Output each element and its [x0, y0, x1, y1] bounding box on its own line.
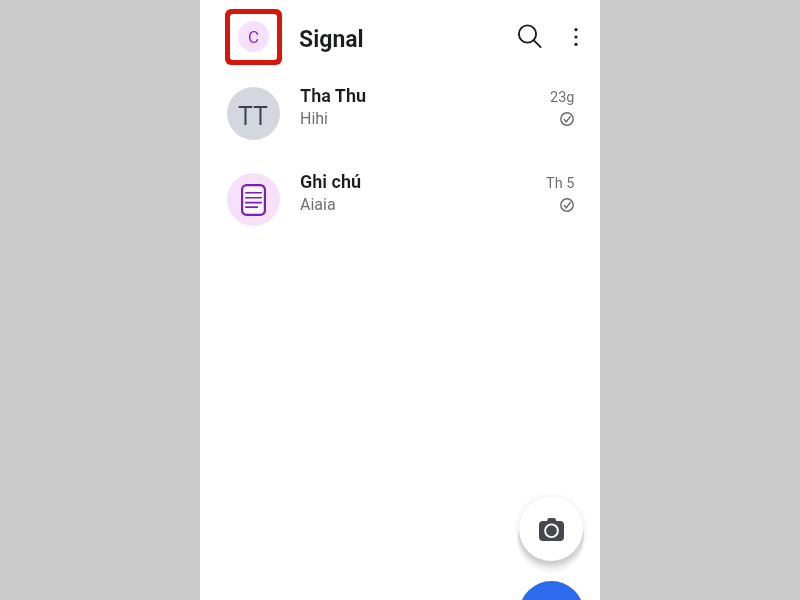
button[interactable]: Ghi chú	[200, 162, 600, 248]
staticText: TT	[238, 102, 269, 131]
button[interactable]: TT	[200, 76, 600, 162]
button[interactable]: New message	[519, 581, 584, 600]
staticText: Th 5	[546, 175, 575, 192]
staticText: Signal	[299, 26, 364, 53]
button[interactable]: More options	[556, 17, 596, 57]
staticText: Hihi	[300, 109, 329, 128]
staticText: Aiaia	[300, 195, 336, 214]
staticText: 23g	[550, 89, 575, 106]
staticText: Ghi chú	[300, 171, 362, 192]
button[interactable]: Camera	[511, 489, 591, 569]
button[interactable]: Search	[508, 17, 548, 57]
staticText: C	[248, 27, 260, 47]
button[interactable]: Profile	[238, 21, 269, 52]
staticText: Tha Thu	[300, 85, 367, 106]
